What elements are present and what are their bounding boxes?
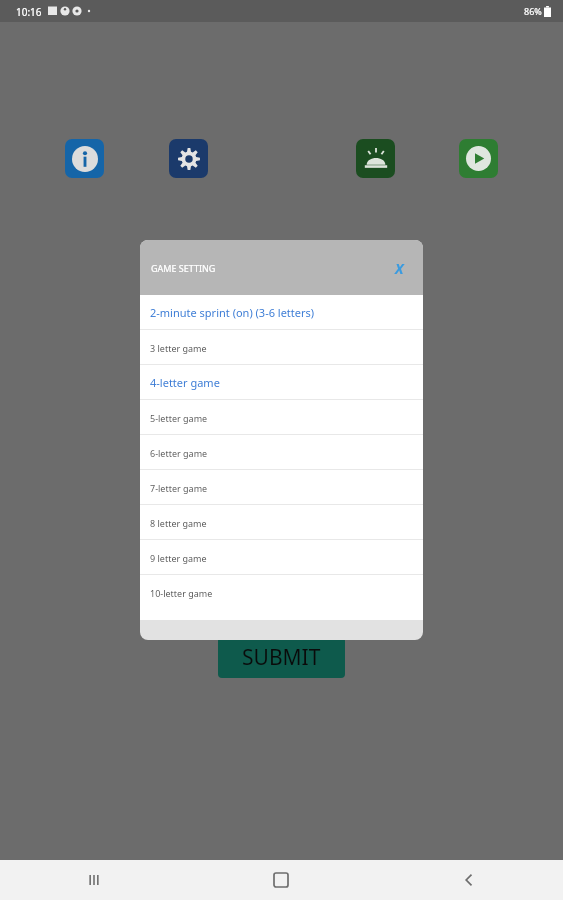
staticText: 10-letter game bbox=[150, 587, 213, 599]
button[interactable]: 7-letter game bbox=[140, 470, 423, 505]
staticText: 10:16 bbox=[16, 5, 42, 19]
button[interactable]: Information bbox=[65, 139, 104, 178]
button[interactable]: 8 letter game bbox=[140, 505, 423, 540]
button[interactable]: SUBMIT bbox=[218, 637, 345, 678]
button[interactable]: 3 letter game bbox=[140, 330, 423, 365]
button[interactable]: Home bbox=[236, 860, 326, 900]
button[interactable]: Back bbox=[424, 860, 514, 900]
staticText: GAME SETTING bbox=[151, 262, 216, 274]
staticText: 9 letter game bbox=[150, 552, 207, 564]
button[interactable]: 6-letter game bbox=[140, 435, 423, 470]
staticText: 3 letter game bbox=[150, 342, 207, 354]
staticText: X bbox=[395, 259, 404, 278]
button[interactable]: Hint bbox=[356, 139, 395, 178]
button[interactable]: Settings bbox=[169, 139, 208, 178]
button[interactable]: Play bbox=[459, 139, 498, 178]
staticText: 86% bbox=[524, 5, 542, 17]
button[interactable]: 2-minute sprint (on) (3-6 letters) bbox=[140, 295, 423, 330]
staticText: 7-letter game bbox=[150, 482, 208, 494]
staticText: 5-letter game bbox=[150, 412, 208, 424]
button[interactable]: 4-letter game bbox=[140, 365, 423, 400]
staticText: 6-letter game bbox=[150, 447, 208, 459]
staticText: 8 letter game bbox=[150, 517, 207, 529]
button[interactable]: 9 letter game bbox=[140, 540, 423, 575]
staticText: 2-minute sprint (on) (3-6 letters) bbox=[150, 305, 315, 320]
button[interactable]: 5-letter game bbox=[140, 400, 423, 435]
button[interactable]: 10-letter game bbox=[140, 575, 423, 610]
button[interactable]: Close bbox=[387, 256, 411, 280]
button[interactable]: Recent apps bbox=[49, 860, 139, 900]
staticText: 4-letter game bbox=[150, 375, 220, 390]
staticText: SUBMIT bbox=[242, 643, 321, 672]
